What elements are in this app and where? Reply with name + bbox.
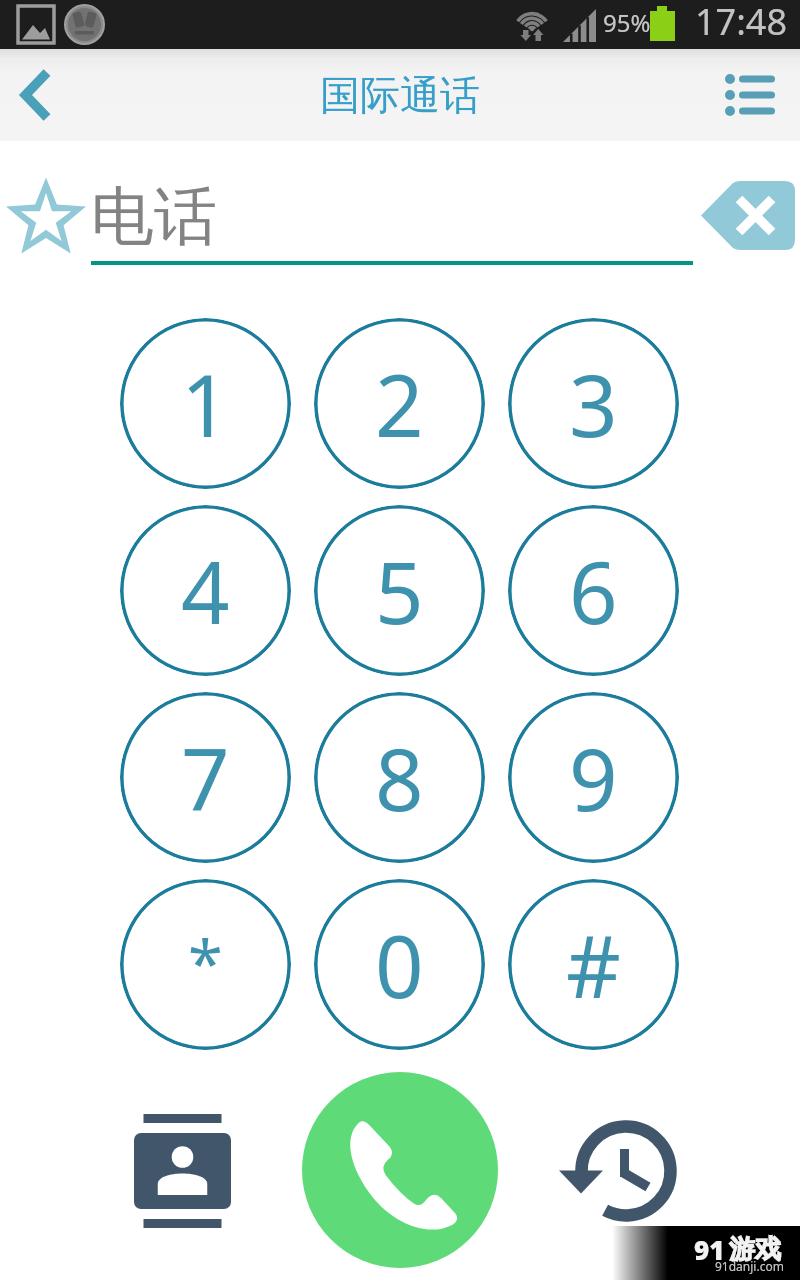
staticText: 91danji.com [715, 1258, 784, 1274]
staticText: # [566, 907, 621, 1023]
staticText: 8 [375, 720, 424, 836]
staticText: 17:48 [695, 0, 788, 46]
button[interactable]: 9 [508, 692, 679, 863]
staticText: * [188, 920, 223, 1006]
staticText: 7 [181, 720, 230, 836]
button[interactable]: 1 [120, 318, 291, 489]
button[interactable]: Menu [708, 49, 800, 141]
staticText: 4 [181, 533, 230, 649]
button[interactable]: Call history [566, 1111, 686, 1231]
button[interactable]: 7 [120, 692, 291, 863]
button[interactable]: 6 [508, 505, 679, 676]
button[interactable]: 3 [508, 318, 679, 489]
button[interactable]: Favorite [4, 176, 86, 256]
staticText: 5 [375, 533, 424, 649]
button[interactable]: 8 [314, 692, 485, 863]
staticText: 电话 [91, 177, 217, 256]
staticText: 3 [569, 346, 618, 462]
button[interactable]: Call [302, 1072, 498, 1268]
staticText: 国际通话 [320, 70, 480, 120]
button[interactable]: Back [0, 49, 92, 141]
button[interactable]: 5 [314, 505, 485, 676]
staticText: 91 [694, 1232, 725, 1267]
staticText: 0 [375, 907, 424, 1023]
staticText: 95% [603, 6, 651, 39]
button[interactable]: * [120, 879, 291, 1050]
button[interactable]: 0 [314, 879, 485, 1050]
button[interactable]: 2 [314, 318, 485, 489]
staticText: 6 [569, 533, 618, 649]
staticText: 1 [181, 346, 230, 462]
button[interactable]: Backspace [701, 181, 795, 250]
staticText: 2 [375, 346, 424, 462]
button[interactable]: Contacts [122, 1111, 242, 1231]
staticText: 游戏 [729, 1233, 781, 1266]
staticText: 9 [569, 720, 618, 836]
button[interactable]: 4 [120, 505, 291, 676]
button[interactable]: # [508, 879, 679, 1050]
